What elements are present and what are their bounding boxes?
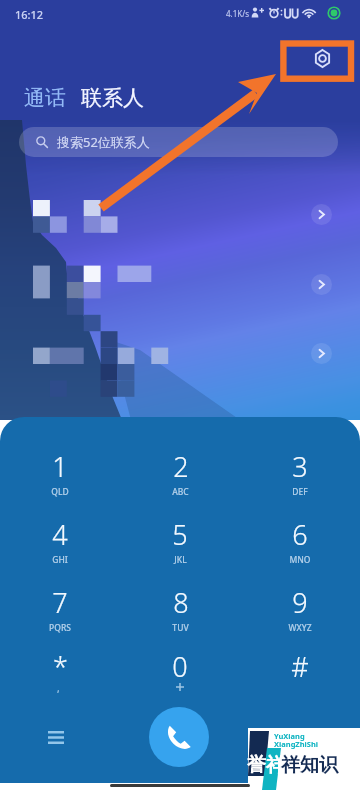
- staticText: 7: [52, 584, 68, 621]
- button[interactable]: 1: [14, 448, 106, 500]
- button[interactable]: *: [14, 648, 106, 700]
- staticText: 联系人: [81, 85, 144, 111]
- staticText: DEF: [292, 486, 308, 498]
- button[interactable]: #: [254, 648, 346, 700]
- button[interactable]: Open contact: [311, 274, 332, 295]
- button[interactable]: 联系人: [76, 82, 149, 114]
- button[interactable]: 9: [254, 584, 346, 636]
- staticText: XiangZhiShi: [274, 739, 319, 749]
- staticText: GHI: [52, 554, 68, 566]
- button[interactable]: Open contact: [311, 204, 332, 225]
- staticText: 4: [52, 516, 68, 553]
- staticText: 3: [292, 448, 308, 485]
- staticText: 4.1K/s: [226, 8, 250, 19]
- staticText: JKL: [174, 554, 187, 566]
- staticText: 祥知识: [281, 753, 338, 777]
- button[interactable]: 7: [14, 584, 106, 636]
- staticText: 6: [292, 516, 308, 553]
- button[interactable]: 2: [134, 448, 226, 500]
- button[interactable]: 通话: [19, 82, 71, 114]
- staticText: 9: [292, 584, 308, 621]
- staticText: 2: [173, 448, 189, 485]
- button[interactable]: Call: [149, 707, 209, 767]
- button[interactable]: 搜索52位联系人: [19, 127, 338, 157]
- staticText: YuXiang: [274, 731, 305, 741]
- button[interactable]: 0: [134, 648, 226, 700]
- staticText: 搜索52位联系人: [57, 133, 150, 151]
- button[interactable]: Open contact: [311, 343, 332, 364]
- staticText: 8: [173, 584, 189, 621]
- button[interactable]: 6: [254, 516, 346, 568]
- staticText: 16:12: [15, 7, 44, 22]
- staticText: 通话: [24, 85, 66, 111]
- staticText: QLD: [51, 486, 69, 498]
- staticText: MNO: [289, 554, 311, 566]
- button[interactable]: 8: [134, 584, 226, 636]
- staticText: 誉祥: [247, 753, 285, 777]
- staticText: 5: [172, 516, 188, 553]
- staticText: 0: [172, 648, 188, 685]
- button[interactable]: 4: [14, 516, 106, 568]
- staticText: WXYZ: [288, 622, 312, 634]
- button[interactable]: Menu: [40, 721, 72, 753]
- staticText: 1: [52, 448, 68, 485]
- staticText: PQRS: [49, 622, 71, 634]
- staticText: *: [53, 648, 68, 685]
- staticText: ,: [57, 681, 60, 695]
- button[interactable]: Settings: [307, 43, 338, 74]
- staticText: TUV: [172, 622, 189, 634]
- button[interactable]: 3: [254, 448, 346, 500]
- button[interactable]: 5: [134, 516, 226, 568]
- staticText: ABC: [172, 486, 189, 498]
- staticText: #: [291, 648, 309, 685]
